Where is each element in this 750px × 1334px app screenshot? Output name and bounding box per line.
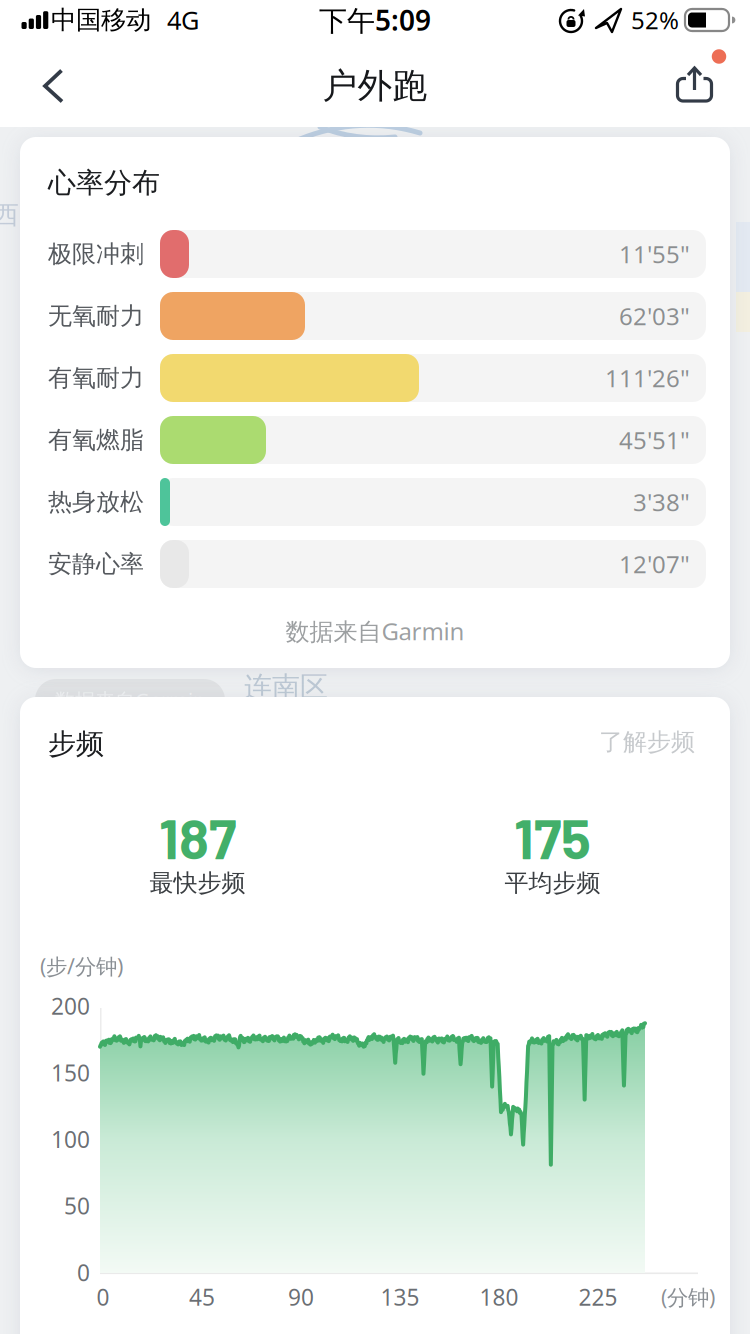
- staticText: (分钟): [661, 1283, 715, 1311]
- staticText: 心率分布: [48, 166, 160, 200]
- staticText: 150: [51, 1057, 90, 1088]
- button[interactable]: Back: [21, 54, 85, 118]
- staticText: 12'07": [619, 548, 690, 580]
- staticText: 无氧耐力: [48, 301, 144, 331]
- staticText: 下午5:09: [319, 1, 431, 39]
- staticText: 0: [77, 1257, 90, 1287]
- staticText: 热身放松: [48, 487, 144, 517]
- button[interactable]: Share: [662, 53, 726, 117]
- staticText: 45'51": [619, 424, 690, 456]
- staticText: 111'26": [605, 362, 690, 394]
- staticText: 180: [479, 1282, 518, 1312]
- staticText: 3'38": [633, 486, 690, 518]
- staticText: 连南区: [244, 670, 328, 704]
- staticText: 步频: [48, 727, 104, 761]
- staticText: 90: [288, 1282, 314, 1312]
- staticText: 极限冲刺: [48, 239, 144, 269]
- staticText: 中国移动: [51, 4, 151, 35]
- staticText: 0: [96, 1282, 109, 1312]
- staticText: 数据来自Garmin: [285, 615, 464, 647]
- staticText: 户外跑: [322, 65, 427, 107]
- staticText: 62'03": [619, 300, 690, 332]
- staticText: 52%: [631, 4, 679, 36]
- staticText: 135: [380, 1282, 419, 1312]
- staticText: 11'55": [619, 238, 690, 270]
- button[interactable]: 了解步频: [599, 727, 695, 757]
- staticText: 100: [51, 1124, 90, 1154]
- staticText: (步/分钟): [40, 952, 123, 980]
- staticText: 200: [51, 991, 90, 1021]
- staticText: 最快步频: [149, 868, 245, 898]
- staticText: 安静心率: [48, 549, 144, 579]
- staticText: 175: [514, 804, 591, 870]
- staticText: 50: [64, 1191, 90, 1221]
- staticText: 了解步频: [599, 727, 695, 757]
- staticText: 平均步频: [504, 868, 600, 898]
- staticText: 4G: [167, 3, 199, 37]
- staticText: 187: [159, 804, 236, 870]
- staticText: 有氧耐力: [48, 363, 144, 393]
- staticText: 225: [578, 1282, 617, 1312]
- staticText: 西: [0, 199, 18, 230]
- staticText: 45: [189, 1282, 215, 1312]
- staticText: 有氧燃脂: [48, 425, 144, 455]
- staticText: 数据来自Garmin: [55, 687, 205, 713]
